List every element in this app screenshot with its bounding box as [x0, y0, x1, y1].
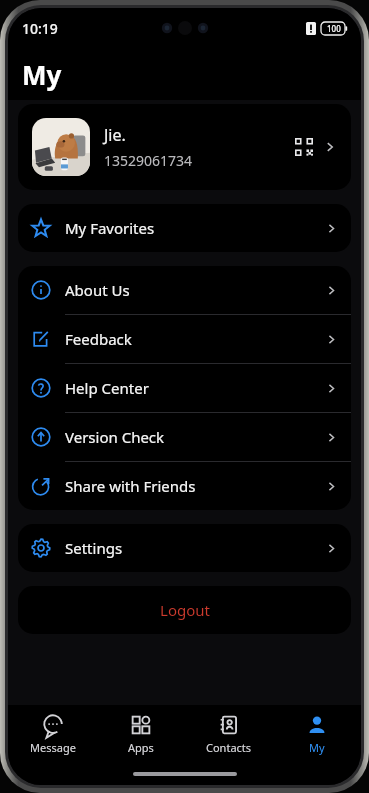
staticText: Jie.: [104, 124, 126, 146]
staticText: Version Check: [65, 427, 325, 447]
button[interactable]: My: [273, 705, 361, 763]
button[interactable]: Share with Friends: [18, 462, 351, 510]
button[interactable]: Message: [8, 705, 97, 763]
staticText: Message: [30, 740, 76, 755]
button[interactable]: Logout: [18, 586, 351, 634]
button[interactable]: QR code: [291, 134, 317, 160]
button[interactable]: Jie.: [18, 104, 351, 190]
button[interactable]: Settings: [18, 524, 351, 572]
button[interactable]: Apps: [97, 705, 185, 763]
staticText: 13529061734: [104, 151, 193, 170]
staticText: Apps: [128, 740, 154, 755]
button[interactable]: Version Check: [18, 413, 351, 461]
staticText: My: [309, 740, 325, 755]
button[interactable]: Feedback: [18, 315, 351, 363]
staticText: Settings: [65, 538, 325, 558]
staticText: Help Center: [65, 378, 325, 398]
staticText: Logout: [160, 600, 210, 620]
button[interactable]: Contacts: [185, 705, 273, 763]
button[interactable]: Help Center: [18, 364, 351, 412]
staticText: My: [22, 57, 62, 92]
button[interactable]: My Favorites: [18, 204, 351, 252]
staticText: 10:19: [22, 19, 58, 38]
staticText: My Favorites: [65, 218, 325, 238]
staticText: Contacts: [206, 740, 252, 755]
staticText: 100: [327, 23, 341, 34]
staticText: Share with Friends: [65, 476, 325, 496]
staticText: About Us: [65, 280, 325, 300]
button[interactable]: About Us: [18, 266, 351, 314]
staticText: Feedback: [65, 329, 325, 349]
